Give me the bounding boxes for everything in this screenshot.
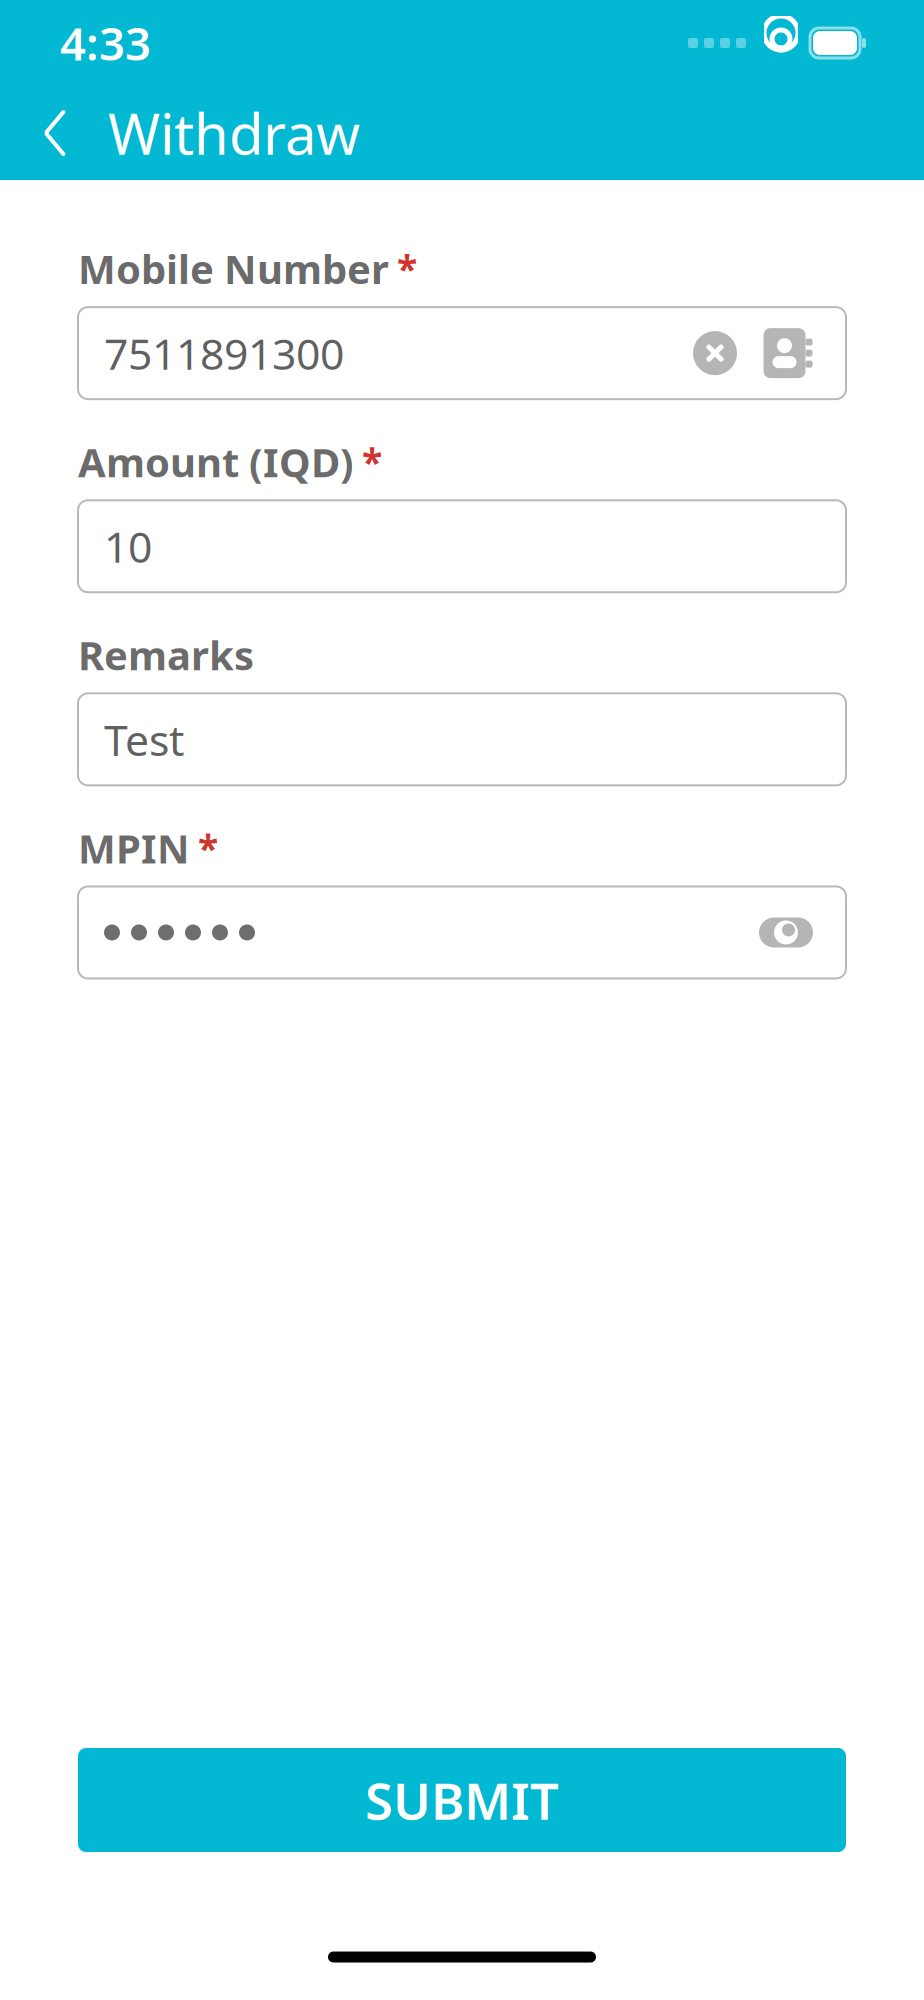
staticText: * <box>397 244 417 293</box>
button[interactable]: Back <box>22 96 88 170</box>
staticText: SUBMIT <box>365 1766 559 1834</box>
staticText: MPIN <box>78 821 190 874</box>
staticText: 4:33 <box>60 13 151 73</box>
button[interactable]: Choose contact <box>744 321 820 385</box>
staticText: Withdraw <box>108 96 360 170</box>
staticText: 10 <box>104 518 152 575</box>
staticText: Remarks <box>78 628 254 681</box>
staticText: Amount (IQD) <box>78 435 354 488</box>
staticText: Test <box>104 711 184 768</box>
button[interactable]: SUBMIT <box>78 1748 846 1852</box>
staticText: * <box>362 437 382 486</box>
button[interactable]: Show MPIN <box>752 906 820 958</box>
staticText: 7511891300 <box>104 325 344 381</box>
button[interactable]: Clear mobile number <box>686 324 744 382</box>
staticText: * <box>198 823 218 873</box>
staticText: Mobile Number <box>78 242 389 295</box>
